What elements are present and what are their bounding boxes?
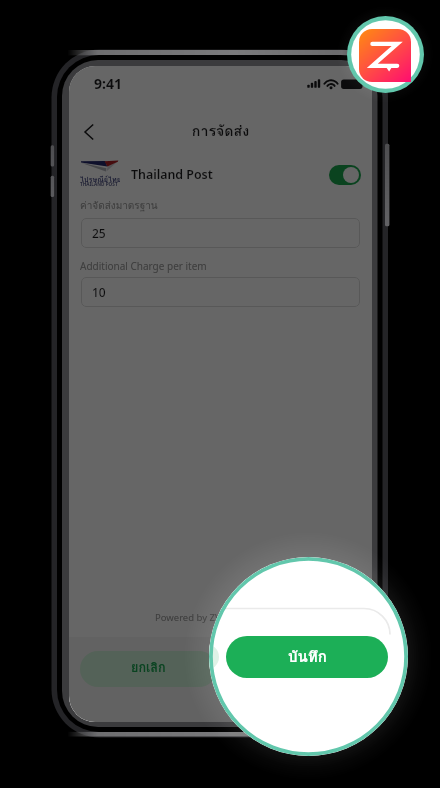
staticText: 10 [92, 284, 106, 300]
staticText: บันทึก [276, 658, 309, 678]
staticText: ค่าจัดส่งมาตรฐาน [80, 198, 158, 214]
button[interactable]: ZWIZ AI logo [347, 16, 424, 93]
button[interactable]: ยกเลิก [80, 651, 217, 687]
button[interactable]: บันทึก [226, 636, 388, 678]
button[interactable]: บันทึก [223, 651, 361, 687]
staticText: Additional Charge per item [80, 259, 207, 273]
button[interactable]: 25 [81, 218, 360, 248]
staticText: ไปรษณีย์ไทย [80, 174, 120, 185]
staticText: THAILAND POST [80, 181, 120, 187]
button[interactable]: Back [73, 116, 105, 148]
staticText: Thailand Post [131, 166, 213, 183]
staticText: ยกเลิก [131, 658, 166, 678]
staticText: Powered by ZWIZ.AI [155, 611, 245, 624]
staticText: การจัดส่ง [69, 120, 372, 143]
staticText: บันทึก [288, 645, 327, 669]
staticText: 25 [92, 225, 106, 241]
button[interactable]: Toggle Thailand Post [329, 165, 361, 185]
staticText: 9:41 [94, 74, 122, 93]
button[interactable]: 10 [81, 277, 360, 307]
